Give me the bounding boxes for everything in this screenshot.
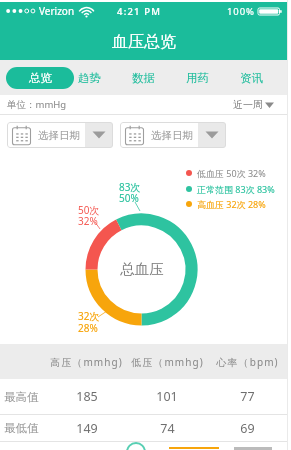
button[interactable]: 高血压 32次 28% bbox=[186, 198, 266, 210]
other: Open date dropdown bbox=[198, 122, 226, 148]
button[interactable]: 选择日期 bbox=[120, 122, 226, 148]
staticText: 总览 bbox=[29, 71, 52, 85]
staticText: 32次 bbox=[78, 309, 100, 323]
staticText: 最低值 bbox=[4, 421, 39, 435]
staticText: 正常范围 83次 83% bbox=[197, 183, 275, 195]
button[interactable]: 用药 bbox=[170, 60, 224, 95]
staticText: 83次 bbox=[119, 180, 141, 194]
staticText: Verizon bbox=[39, 4, 75, 18]
staticText: 低压（mmhg) bbox=[131, 355, 204, 369]
staticText: 101 bbox=[156, 388, 178, 405]
other: Open date dropdown bbox=[85, 122, 113, 148]
staticText: 低血压 50次 32% bbox=[197, 167, 266, 179]
button[interactable]: 选择日期 bbox=[7, 122, 113, 148]
staticText: 69 bbox=[240, 420, 255, 437]
staticText: 100% bbox=[227, 5, 255, 18]
staticText: 单位：mmHg bbox=[7, 98, 67, 111]
staticText: 50次 bbox=[78, 203, 100, 217]
staticText: 资讯 bbox=[240, 71, 263, 85]
staticText: 77 bbox=[240, 388, 255, 405]
staticText: 数据 bbox=[132, 71, 155, 85]
staticText: 用药 bbox=[186, 71, 209, 85]
staticText: 50% bbox=[119, 191, 139, 205]
staticText: 总血压 bbox=[120, 260, 164, 278]
staticText: 选择日期 bbox=[38, 129, 80, 142]
staticText: 心率（bpm) bbox=[216, 355, 279, 369]
staticText: 选择日期 bbox=[151, 129, 193, 142]
staticText: 185 bbox=[76, 388, 98, 405]
button[interactable]: 近一周 bbox=[233, 98, 275, 111]
button[interactable]: 数据 bbox=[116, 60, 170, 95]
staticText: 74 bbox=[160, 420, 175, 437]
staticText: 血压总览 bbox=[112, 32, 176, 52]
staticText: 32% bbox=[78, 214, 98, 228]
button[interactable]: 资讯 bbox=[224, 60, 278, 95]
button[interactable]: 趋势 bbox=[62, 60, 116, 95]
staticText: 趋势 bbox=[78, 71, 101, 85]
button[interactable]: 总览 bbox=[6, 67, 74, 89]
staticText: 最高值 bbox=[4, 390, 39, 404]
staticText: 高压（mmhg) bbox=[50, 355, 123, 369]
staticText: 近一周 bbox=[233, 98, 263, 111]
button[interactable]: 低血压 50次 32% bbox=[186, 167, 266, 179]
staticText: 149 bbox=[76, 420, 98, 437]
button[interactable]: 最低值 bbox=[0, 415, 287, 441]
staticText: 28% bbox=[78, 321, 98, 335]
button[interactable]: 正常范围 83次 83% bbox=[186, 183, 275, 195]
staticText: 4:21 PM bbox=[117, 5, 162, 18]
button[interactable]: 最高值 bbox=[0, 379, 287, 414]
staticText: 高血压 32次 28% bbox=[197, 198, 266, 210]
